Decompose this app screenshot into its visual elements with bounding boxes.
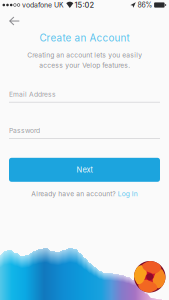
staticText: vodafone UK: [22, 1, 64, 9]
staticText: 86%: [137, 1, 152, 9]
staticText: 15:02: [74, 0, 94, 9]
button[interactable]: Back: [9, 10, 28, 32]
staticText: Creating an account lets you easily acce…: [27, 51, 142, 69]
staticText: Email Address: [9, 90, 56, 98]
staticText: Next: [76, 165, 92, 174]
staticText: Already have an account?: [31, 190, 115, 198]
staticText: Create an Account: [39, 32, 129, 44]
staticText: Log In: [118, 190, 138, 198]
button[interactable]: Next: [9, 158, 160, 182]
staticText: Password: [9, 126, 40, 135]
button[interactable]: Already have an account?: [9, 188, 160, 200]
